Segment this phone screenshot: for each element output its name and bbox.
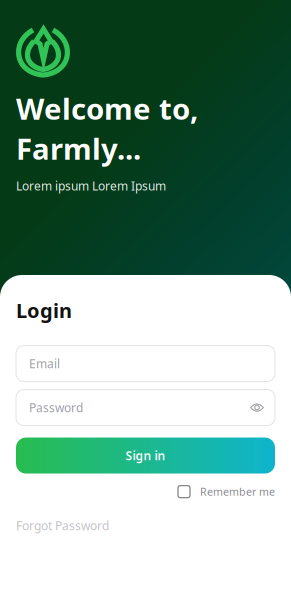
button[interactable]: Forgot Password	[16, 518, 109, 534]
button[interactable]: Remember me	[178, 485, 275, 499]
staticText: Login	[16, 297, 72, 324]
staticText: Forgot Password	[16, 518, 109, 534]
staticText: Sign in	[125, 448, 165, 463]
staticText: Remember me	[200, 485, 275, 499]
staticText: Password	[29, 400, 83, 415]
staticText: Welcome to,	[16, 89, 198, 128]
staticText: Farmly...	[16, 129, 141, 168]
button[interactable]: Sign in	[16, 438, 275, 474]
staticText: Lorem ipsum Lorem Ipsum	[16, 178, 166, 194]
staticText: Email	[29, 356, 60, 371]
